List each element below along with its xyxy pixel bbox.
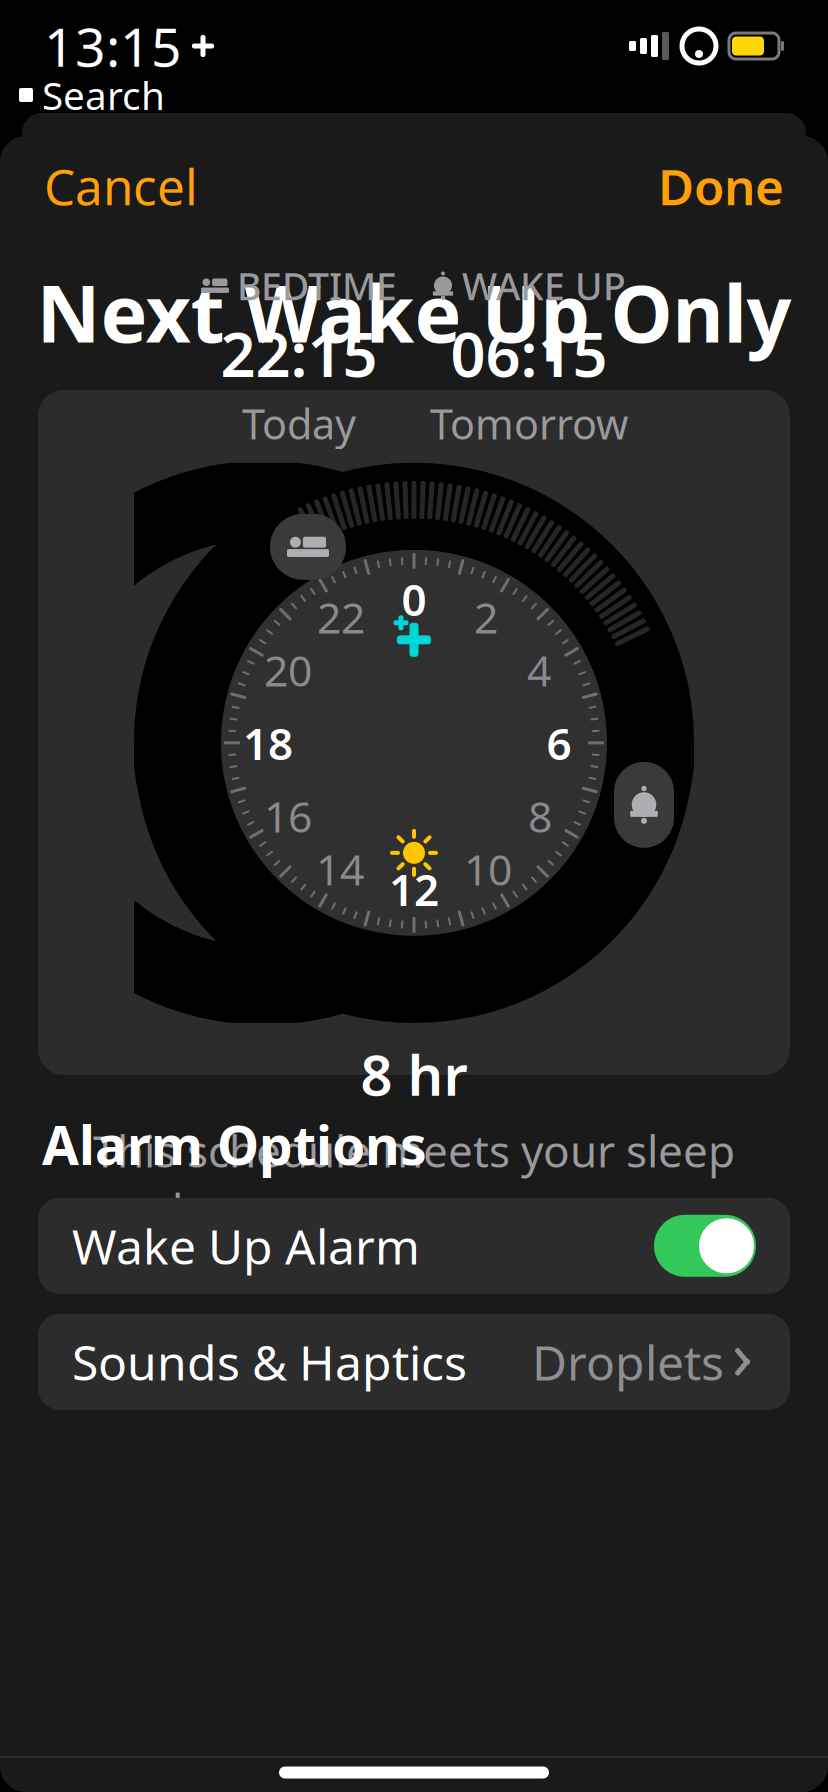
staticText: Tomorrow	[430, 396, 628, 451]
button[interactable]: Sounds & Haptics	[38, 1314, 790, 1410]
staticText: Next Wake Up Only	[36, 260, 791, 364]
button[interactable]: Cancel	[38, 145, 204, 227]
staticText: 06:15	[450, 312, 607, 394]
staticText: Droplets	[532, 1330, 724, 1394]
staticText: 18	[243, 714, 293, 772]
button[interactable]: Search	[14, 67, 169, 123]
staticText: Done	[658, 153, 784, 219]
staticText: 10	[464, 840, 512, 897]
staticText: 13:15	[44, 11, 182, 81]
staticText: This schedule meets your sleep goal.	[93, 1121, 735, 1238]
staticText: 8 hr	[360, 1037, 467, 1111]
button[interactable]: Wake Up Alarm	[38, 1198, 790, 1294]
staticText: Sounds & Haptics	[72, 1330, 467, 1394]
staticText: 20	[264, 641, 312, 698]
staticText: Wake Up Alarm	[72, 1214, 420, 1278]
staticText: 16	[264, 787, 312, 844]
staticText: 6	[546, 714, 571, 772]
staticText: 14	[316, 840, 364, 897]
staticText: Search	[42, 69, 165, 121]
staticText: 0	[401, 570, 426, 628]
button[interactable]: Wake up handle	[614, 762, 674, 848]
staticText: Today	[242, 396, 356, 451]
staticText: 22	[317, 588, 365, 645]
staticText: BEDTIME	[237, 261, 397, 310]
staticText: Cancel	[44, 153, 198, 219]
staticText: Alarm Options	[42, 1109, 427, 1180]
staticText: 2	[474, 588, 498, 645]
staticText: 12	[389, 860, 439, 918]
staticText: 22:15	[220, 312, 377, 394]
button[interactable]: Done	[652, 145, 790, 227]
button[interactable]: Bedtime handle	[270, 514, 346, 580]
staticText: 8	[528, 787, 552, 844]
staticText: WAKE UP	[462, 261, 626, 310]
staticText: 4	[527, 641, 551, 698]
